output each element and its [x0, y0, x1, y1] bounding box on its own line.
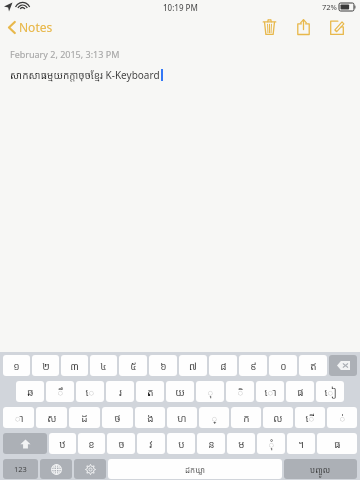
- button[interactable]: 123: [3, 459, 38, 479]
- staticText: ុ: [207, 385, 214, 399]
- button[interactable]: យ: [166, 381, 194, 402]
- staticText: ្: [211, 411, 218, 425]
- button[interactable]: ុំ: [257, 433, 285, 454]
- staticText: ិ: [237, 385, 244, 399]
- staticText: ដ: [81, 411, 88, 425]
- staticText: Notes: [19, 19, 53, 35]
- button[interactable]: ៦: [149, 355, 177, 376]
- staticText: ផ: [297, 385, 304, 399]
- button[interactable]: ប: [167, 433, 195, 454]
- button[interactable]: បញ្ចូល: [284, 459, 357, 479]
- staticText: ឹ: [57, 385, 64, 399]
- staticText: ប: [178, 437, 185, 451]
- staticText: ច: [118, 437, 125, 451]
- staticText: 72%: [322, 2, 337, 12]
- staticText: ។: [298, 437, 304, 451]
- button[interactable]: ៧: [179, 355, 207, 376]
- button[interactable]: ៤: [90, 355, 117, 376]
- button[interactable]: ិ: [226, 381, 254, 402]
- button[interactable]: ០: [269, 355, 297, 376]
- button[interactable]: ៩: [239, 355, 267, 376]
- staticText: ុំ: [268, 437, 275, 451]
- staticText: ល: [273, 411, 283, 425]
- staticText: រ: [119, 385, 122, 399]
- button[interactable]: Shift: [3, 433, 47, 454]
- button[interactable]: ់: [327, 407, 357, 428]
- button[interactable]: ដកឃ្លា: [108, 459, 282, 479]
- button[interactable]: ក: [231, 407, 261, 428]
- button[interactable]: ុ: [196, 381, 224, 402]
- staticText: ៨: [220, 359, 227, 373]
- button[interactable]: ន: [197, 433, 225, 454]
- staticText: ៣: [70, 359, 79, 373]
- button[interactable]: ៣: [61, 355, 88, 376]
- staticText: ៧: [189, 359, 197, 373]
- staticText: ៥: [130, 359, 137, 373]
- staticText: February 2, 2015, 3:13 PM: [10, 48, 120, 60]
- button[interactable]: ដ: [69, 407, 100, 428]
- button[interactable]: ច: [107, 433, 135, 454]
- button[interactable]: ៨: [209, 355, 237, 376]
- staticText: ហ: [177, 411, 187, 425]
- staticText: ់: [339, 411, 346, 425]
- button[interactable]: Notes: [5, 17, 56, 37]
- button[interactable]: ថ: [102, 407, 133, 428]
- button[interactable]: ហ: [167, 407, 197, 428]
- staticText: ៀ: [324, 385, 337, 399]
- staticText: ធ: [334, 437, 341, 451]
- staticText: ក: [243, 411, 250, 425]
- button[interactable]: ឥ: [299, 355, 327, 376]
- button[interactable]: ្: [199, 407, 229, 428]
- button[interactable]: ង: [135, 407, 165, 428]
- button[interactable]: Backspace: [329, 355, 357, 376]
- staticText: ១: [13, 359, 20, 373]
- staticText: 10:19 PM: [163, 2, 198, 13]
- staticText: សាកសាធម្មយកក្តាចុចខ្មែរ K-Keyboard​: [10, 68, 160, 82]
- button[interactable]: ខ: [78, 433, 105, 454]
- button[interactable]: ២: [32, 355, 59, 376]
- staticText: បញ្ចូល: [310, 464, 331, 475]
- staticText: 123: [14, 464, 27, 474]
- button[interactable]: ា: [3, 407, 34, 428]
- staticText: ឋ: [59, 437, 66, 451]
- button[interactable]: ។: [287, 433, 315, 454]
- button[interactable]: វ: [137, 433, 165, 454]
- button[interactable]: Delete: [254, 15, 284, 39]
- button[interactable]: ត: [136, 381, 164, 402]
- button[interactable]: ល: [263, 407, 293, 428]
- button[interactable]: Share: [288, 15, 318, 39]
- staticText: ឥ: [310, 359, 317, 373]
- staticText: ា: [14, 411, 24, 425]
- staticText: ០: [280, 359, 287, 373]
- staticText: ត: [147, 385, 154, 399]
- button[interactable]: ោ: [256, 381, 284, 402]
- staticText: ង: [147, 411, 154, 425]
- staticText: ស: [47, 411, 57, 425]
- staticText: ើ: [305, 411, 315, 425]
- staticText: វ: [149, 437, 153, 451]
- button[interactable]: Change keyboard: [40, 459, 72, 479]
- button[interactable]: រ: [106, 381, 134, 402]
- button[interactable]: Keyboard settings: [74, 459, 106, 479]
- staticText: ៤: [100, 359, 107, 373]
- button[interactable]: ៥: [119, 355, 147, 376]
- staticText: ថ: [114, 411, 121, 425]
- staticText: ោ: [264, 385, 277, 399]
- button[interactable]: ើ: [295, 407, 325, 428]
- button[interactable]: ៀ: [316, 381, 344, 402]
- button[interactable]: ផ: [286, 381, 314, 402]
- button[interactable]: ម: [227, 433, 255, 454]
- staticText: ខ: [88, 437, 95, 451]
- button[interactable]: េ: [76, 381, 104, 402]
- button[interactable]: ឆ: [16, 381, 44, 402]
- button[interactable]: ឹ: [46, 381, 74, 402]
- button[interactable]: ធ: [317, 433, 357, 454]
- button[interactable]: New Note: [322, 15, 352, 39]
- staticText: េ: [85, 385, 95, 399]
- staticText: ន: [208, 437, 215, 451]
- button[interactable]: ឋ: [49, 433, 76, 454]
- button[interactable]: ស: [36, 407, 67, 428]
- staticText: យ: [175, 385, 185, 399]
- staticText: ២: [42, 359, 50, 373]
- button[interactable]: ១: [3, 355, 30, 376]
